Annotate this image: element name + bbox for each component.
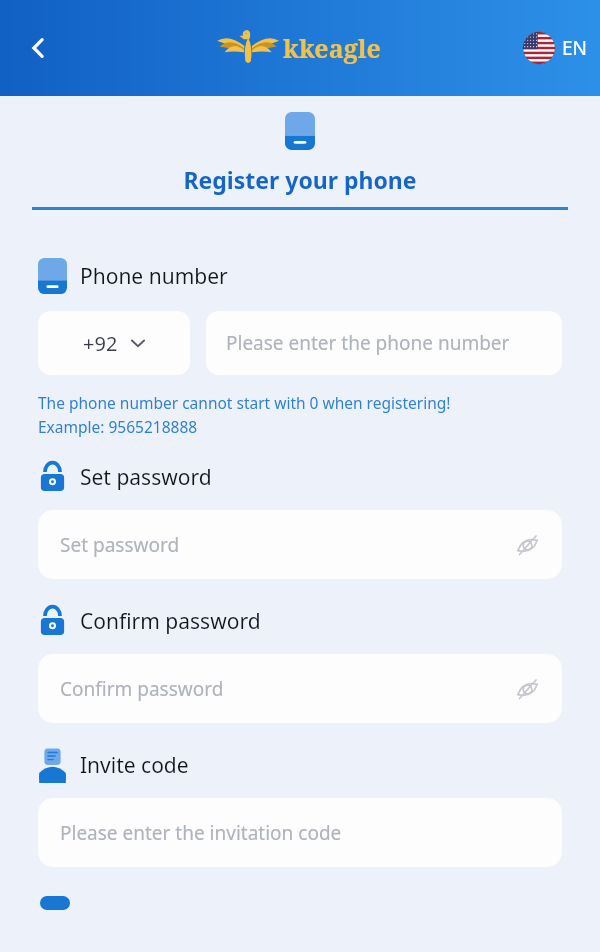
staticText: EN bbox=[562, 35, 588, 61]
staticText: Please enter the phone number bbox=[226, 330, 510, 356]
staticText: Confirm password bbox=[60, 676, 224, 702]
other: Language bbox=[523, 32, 555, 64]
button[interactable]: Show password bbox=[510, 672, 544, 706]
staticText: Invite code bbox=[80, 751, 189, 780]
button[interactable]: Set password bbox=[38, 510, 562, 579]
button[interactable]: +92 bbox=[38, 311, 190, 375]
staticText: Set password bbox=[60, 532, 180, 558]
button[interactable]: Show password bbox=[510, 528, 544, 562]
staticText: Register your phone bbox=[183, 164, 417, 195]
staticText: Phone number bbox=[80, 262, 228, 291]
button[interactable]: Language bbox=[523, 32, 588, 64]
button[interactable]: Confirm password bbox=[38, 654, 562, 723]
button[interactable]: Please enter the invitation code bbox=[38, 798, 562, 867]
staticText: +92 bbox=[83, 330, 118, 357]
staticText: The phone number cannot start with 0 whe… bbox=[38, 392, 451, 413]
staticText: Confirm password bbox=[80, 607, 261, 636]
button[interactable]: Please enter the phone number bbox=[206, 311, 562, 375]
staticText: Example: 9565218888 bbox=[38, 416, 198, 437]
staticText: Set password bbox=[80, 463, 212, 492]
staticText: kkeagle bbox=[283, 31, 381, 65]
button[interactable]: Back bbox=[14, 24, 62, 72]
staticText: Please enter the invitation code bbox=[60, 820, 342, 846]
